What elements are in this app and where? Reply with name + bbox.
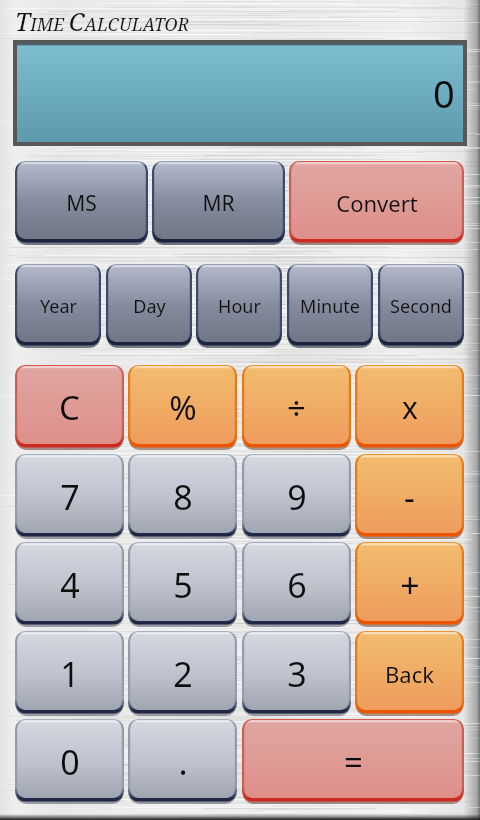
staticText: 1 [60, 651, 80, 697]
staticText: x [402, 387, 418, 428]
button[interactable]: Convert [289, 161, 464, 245]
button[interactable]: MS [15, 161, 148, 245]
button[interactable]: x [355, 365, 464, 450]
button[interactable]: MR [152, 161, 285, 245]
button[interactable]: - [355, 454, 464, 539]
button[interactable]: + [355, 542, 464, 627]
button[interactable]: % [128, 365, 237, 450]
staticText: 2 [173, 651, 193, 697]
staticText: + [400, 562, 420, 608]
staticText: Year [40, 294, 77, 319]
staticText: 7 [60, 474, 80, 520]
staticText: 6 [287, 562, 307, 608]
staticText: MS [66, 189, 97, 218]
button[interactable]: Second [378, 264, 464, 348]
staticText: 9 [287, 474, 307, 520]
staticText: Second [390, 294, 452, 319]
button[interactable]: C [15, 365, 124, 450]
staticText: % [169, 385, 197, 430]
button[interactable]: 6 [242, 542, 351, 627]
staticText: Minute [300, 294, 360, 319]
staticText: 0 [60, 739, 80, 785]
staticText: 0 [433, 67, 455, 119]
button[interactable]: Year [15, 264, 101, 348]
button[interactable]: . [128, 719, 237, 804]
staticText: 5 [173, 562, 193, 608]
staticText: C [59, 385, 80, 430]
staticText: Back [385, 659, 434, 689]
button[interactable]: 4 [15, 542, 124, 627]
button[interactable]: 9 [242, 454, 351, 539]
staticText: 8 [173, 474, 193, 520]
button[interactable]: 2 [128, 631, 237, 716]
staticText: 4 [60, 562, 80, 608]
button[interactable]: ÷ [242, 365, 351, 450]
button[interactable]: 7 [15, 454, 124, 539]
staticText: - [404, 474, 415, 520]
button[interactable]: Hour [196, 264, 282, 348]
button[interactable]: 1 [15, 631, 124, 716]
button[interactable]: Back [355, 631, 464, 716]
button[interactable]: Day [106, 264, 192, 348]
staticText: MR [202, 189, 235, 218]
button[interactable]: 5 [128, 542, 237, 627]
staticText: . [178, 739, 188, 785]
staticText: Day [133, 294, 166, 319]
staticText: = [344, 739, 363, 784]
staticText: Convert [336, 188, 418, 218]
button[interactable]: 0 [15, 719, 124, 804]
button[interactable]: 3 [242, 631, 351, 716]
button[interactable]: = [242, 719, 464, 804]
button[interactable]: Minute [287, 264, 373, 348]
staticText: TIME CALCULATOR [15, 4, 190, 38]
staticText: 3 [287, 651, 307, 697]
staticText: ÷ [287, 385, 306, 430]
button[interactable]: 8 [128, 454, 237, 539]
staticText: Hour [218, 294, 261, 319]
